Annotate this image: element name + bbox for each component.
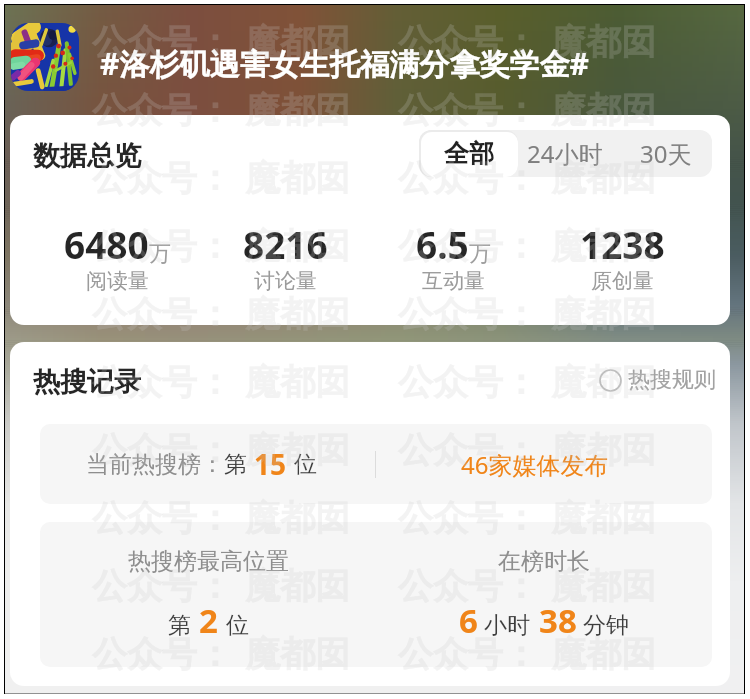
staticText: 魔都囡: [245, 496, 350, 540]
staticText: 6.5: [416, 219, 469, 269]
button[interactable]: Topic avatar: [11, 23, 79, 91]
staticText: 魔都囡: [245, 292, 350, 336]
staticText: 公众号：: [398, 20, 538, 64]
staticText: 魔都囡: [551, 564, 656, 608]
staticText: 魔都囡: [551, 632, 656, 676]
staticText: 魔都囡: [245, 156, 350, 200]
staticText: 魔都囡: [551, 496, 656, 540]
staticText: 公众号：: [92, 88, 232, 132]
staticText: 公众号：: [92, 20, 232, 64]
staticText: 位: [226, 611, 249, 640]
staticText: 公众号：: [398, 428, 538, 472]
staticText: 公众号：: [398, 564, 538, 608]
staticText: 24小时: [527, 137, 603, 170]
staticText: 魔都囡: [551, 20, 656, 64]
staticText: 公众号：: [92, 496, 232, 540]
staticText: 第: [224, 450, 247, 479]
staticText: 公众号：: [398, 292, 538, 336]
staticText: 魔都囡: [551, 224, 656, 268]
staticText: 公众号：: [92, 156, 232, 200]
staticText: 原创量: [591, 268, 654, 294]
staticText: 小时: [484, 611, 530, 640]
staticText: 魔都囡: [245, 224, 350, 268]
staticText: 互动量: [422, 268, 485, 294]
staticText: 魔都囡: [245, 632, 350, 676]
staticText: 魔都囡: [551, 292, 656, 336]
staticText: 万: [469, 240, 491, 268]
staticText: 1238: [580, 219, 665, 269]
staticText: 30天: [640, 137, 692, 170]
staticText: 公众号：: [398, 632, 538, 676]
staticText: 魔都囡: [551, 360, 656, 404]
staticText: 6: [459, 598, 478, 643]
button[interactable]: 30天: [619, 130, 712, 177]
staticText: #洛杉矶遇害女生托福满分拿奖学金#: [100, 43, 589, 84]
staticText: 数据总览: [33, 139, 141, 173]
staticText: 热搜规则: [628, 366, 716, 394]
staticText: 位: [294, 450, 317, 479]
staticText: 38: [539, 598, 577, 643]
staticText: 魔都囡: [551, 428, 656, 472]
staticText: 魔都囡: [245, 20, 350, 64]
staticText: 魔都囡: [551, 156, 656, 200]
staticText: 15: [254, 445, 287, 483]
staticText: 第: [168, 611, 191, 640]
staticText: 公众号：: [398, 360, 538, 404]
staticText: 公众号：: [92, 564, 232, 608]
staticText: 公众号：: [92, 632, 232, 676]
staticText: 魔都囡: [245, 564, 350, 608]
staticText: 公众号：: [398, 496, 538, 540]
staticText: 2: [199, 598, 218, 643]
staticText: 魔都囡: [551, 88, 656, 132]
staticText: 魔都囡: [245, 428, 350, 472]
staticText: 热搜榜最高位置: [128, 547, 289, 576]
staticText: 公众号：: [398, 88, 538, 132]
staticText: 8216: [243, 219, 328, 269]
staticText: 讨论量: [254, 268, 317, 294]
staticText: 分钟: [583, 611, 629, 640]
staticText: 阅读量: [86, 268, 149, 294]
staticText: 魔都囡: [245, 88, 350, 132]
button[interactable]: 24小时: [523, 130, 607, 177]
staticText: 公众号：: [92, 224, 232, 268]
button[interactable]: 热搜规则: [599, 366, 716, 394]
staticText: 公众号：: [92, 428, 232, 472]
staticText: 公众号：: [398, 224, 538, 268]
staticText: 全部: [444, 138, 494, 169]
staticText: 公众号：: [398, 156, 538, 200]
staticText: 公众号：: [92, 360, 232, 404]
staticText: 公众号：: [92, 292, 232, 336]
staticText: 在榜时长: [498, 547, 590, 576]
button[interactable]: 全部: [419, 130, 518, 177]
staticText: 6480: [64, 219, 149, 269]
staticText: 魔都囡: [245, 360, 350, 404]
staticText: 46家媒体发布: [461, 448, 609, 481]
staticText: 热搜记录: [33, 365, 141, 399]
staticText: 万: [149, 240, 171, 268]
staticText: 当前热搜榜：: [86, 450, 224, 479]
